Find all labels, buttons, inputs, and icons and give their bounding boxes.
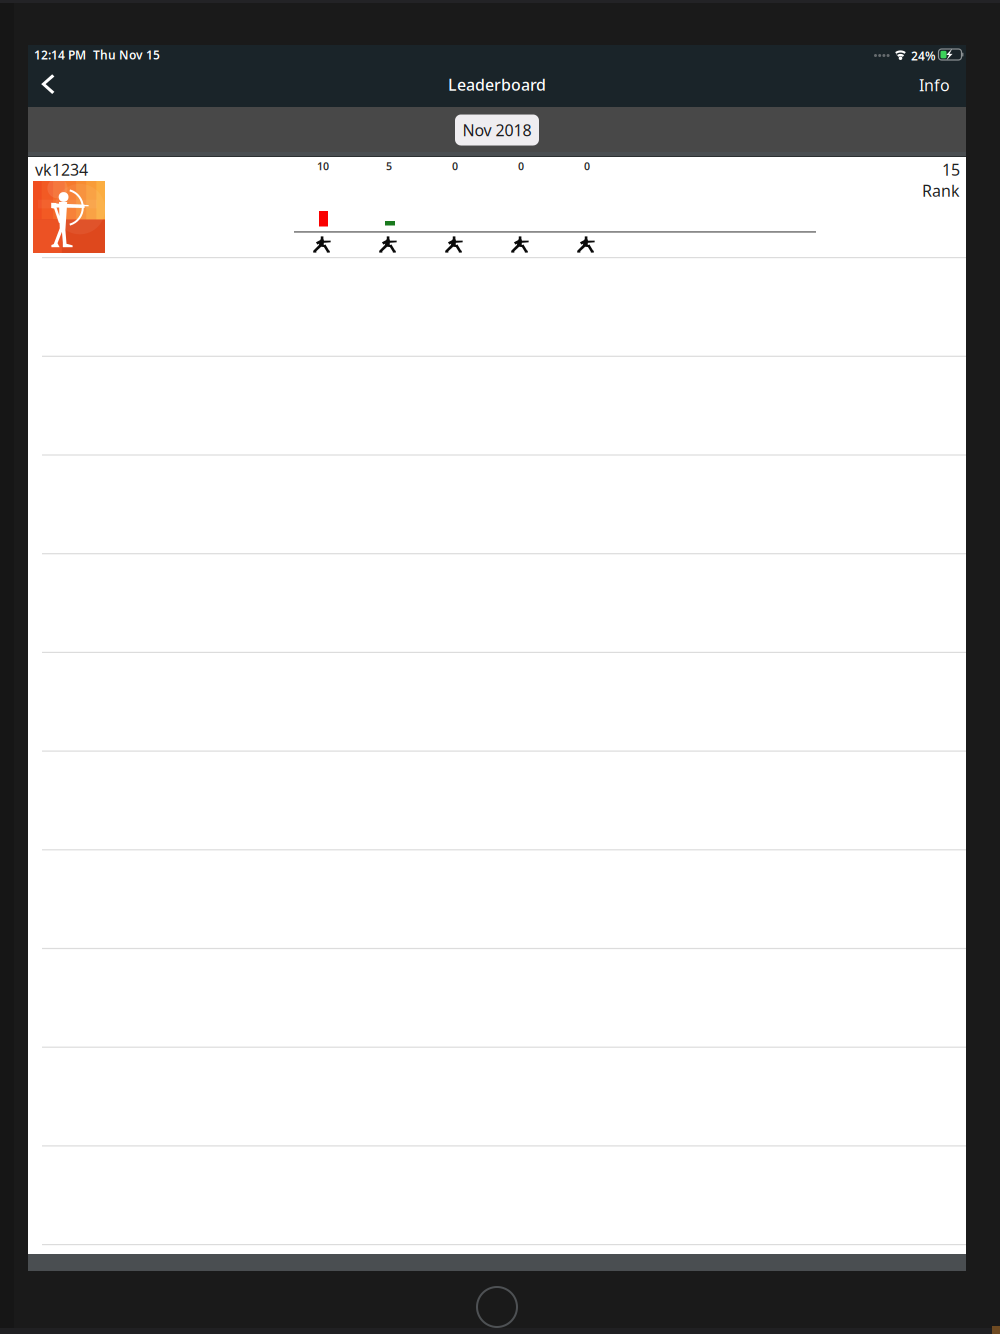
staticText: Nov 2018 xyxy=(462,119,531,141)
button[interactable]: Info xyxy=(872,67,950,103)
staticText: Rank xyxy=(922,180,960,201)
staticText: Leaderboard xyxy=(448,74,546,95)
staticText: Thu Nov 15 xyxy=(93,47,160,63)
staticText: Info xyxy=(919,74,950,96)
staticText: 0 xyxy=(518,159,524,173)
staticText: 24% xyxy=(911,48,936,64)
staticText: vk1234 xyxy=(35,159,88,180)
staticText: 15 xyxy=(942,159,960,180)
button[interactable]: Nov 2018 xyxy=(455,114,539,145)
staticText: 10 xyxy=(317,159,329,173)
staticText: 0 xyxy=(452,159,458,173)
button[interactable]: Back xyxy=(32,68,82,102)
staticText: 0 xyxy=(584,159,590,173)
staticText: 12:14 PM xyxy=(34,47,86,63)
staticText: 5 xyxy=(386,159,392,173)
